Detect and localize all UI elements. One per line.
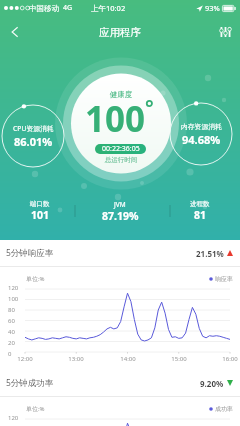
staticText: 健康度 (71, 90, 171, 99)
staticText: 应用程序 (99, 26, 141, 39)
staticText: 上午10:02 (91, 3, 126, 13)
staticText: 100 (85, 95, 146, 143)
button[interactable]: Filter (210, 17, 240, 47)
staticText: 9.20% (200, 378, 224, 389)
staticText: 端口数 (30, 200, 50, 208)
staticText: 101 (31, 208, 50, 222)
staticText: 87.19% (102, 209, 139, 222)
staticText: 15:00 (168, 355, 190, 363)
staticText: 4G (63, 3, 73, 13)
staticText: 21.51% (196, 248, 224, 259)
staticText: 60 (8, 317, 15, 325)
staticText: 00:22:36:05 (102, 144, 140, 154)
staticText: 13:00 (65, 355, 87, 363)
staticText: 5分钟响应率 (6, 247, 54, 259)
button[interactable]: 5分钟响应率 (6, 240, 233, 266)
staticText: 内存资源消耗 (181, 122, 222, 131)
staticText: 响应率 (215, 275, 233, 283)
staticText: 总运行时间 (71, 156, 171, 164)
staticText: 单位:% (26, 405, 45, 413)
staticText: 成功率 (215, 405, 233, 413)
staticText: 81 (194, 208, 207, 222)
button[interactable]: 5分钟成功率 (6, 370, 233, 396)
staticText: 120 (8, 284, 19, 292)
staticText: 16:00 (219, 355, 240, 363)
staticText: 40 (8, 328, 15, 336)
staticText: 14:00 (117, 355, 139, 363)
staticText: 单位:% (26, 275, 45, 283)
staticText: 12:00 (14, 355, 36, 363)
button[interactable]: 端口数 (0, 200, 80, 222)
staticText: 中国移动 (29, 4, 59, 13)
staticText: 进程数 (190, 200, 210, 208)
staticText: 100 (8, 295, 19, 303)
staticText: 120 (8, 414, 19, 422)
staticText: 20 (8, 339, 15, 347)
button[interactable]: 00:22:36:05 (95, 144, 146, 154)
button[interactable]: 进程数 (160, 200, 240, 222)
button[interactable]: Back (0, 17, 30, 47)
staticText: 80 (8, 306, 15, 314)
staticText: 86.01% (14, 134, 53, 149)
staticText: 94.68% (182, 132, 221, 147)
staticText: 5分钟成功率 (6, 377, 54, 389)
staticText: CPU资源消耗 (13, 124, 54, 133)
staticText: 93% (205, 3, 220, 13)
staticText: JVM (114, 200, 126, 209)
button[interactable]: JVM (80, 200, 160, 222)
staticText: 0 (8, 350, 12, 358)
